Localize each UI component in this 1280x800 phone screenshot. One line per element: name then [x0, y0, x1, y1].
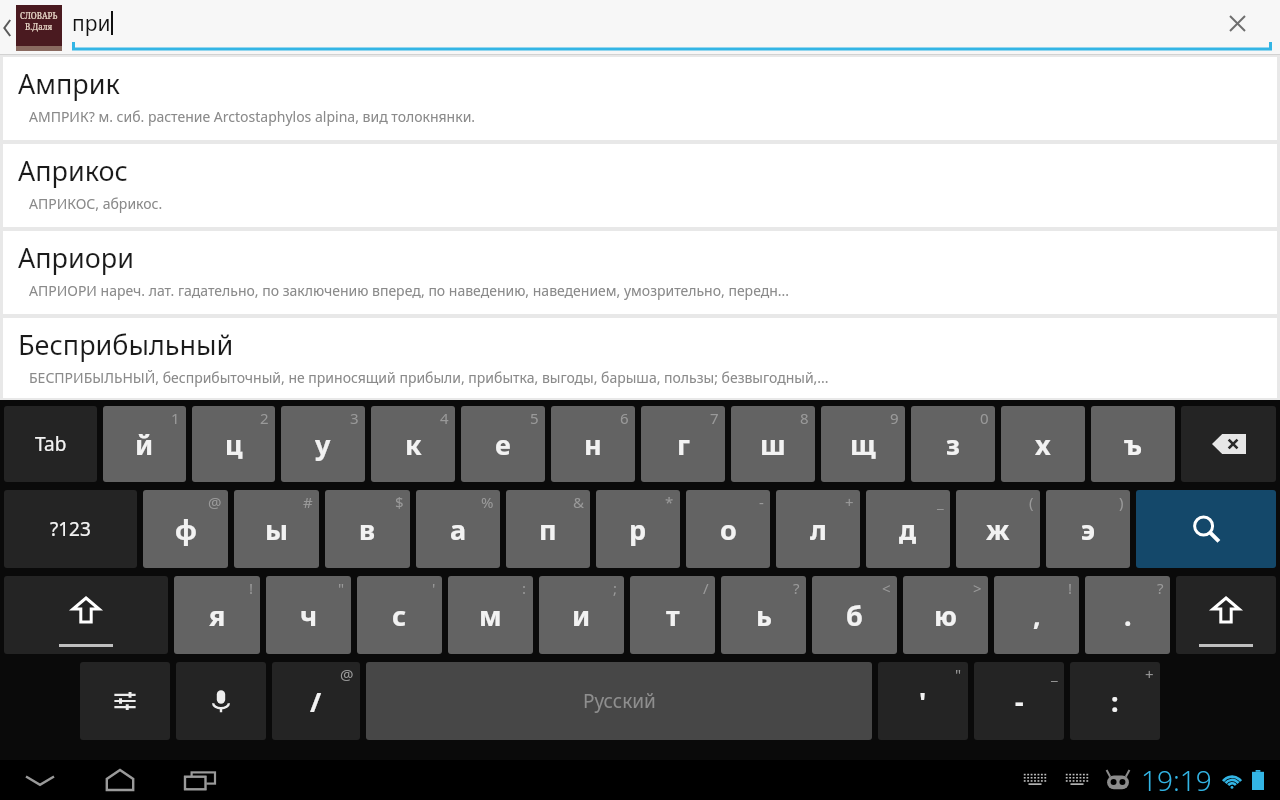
button[interactable]: е — [461, 406, 545, 482]
button[interactable]: Бесприбыльный — [3, 318, 1277, 398]
staticText: * — [665, 492, 674, 512]
staticText: ; — [613, 578, 618, 598]
button[interactable]: ж — [956, 490, 1040, 568]
button[interactable]: и — [539, 576, 624, 654]
staticText: _ — [937, 492, 944, 512]
button[interactable]: щ — [821, 406, 905, 482]
button[interactable]: ?123 — [4, 490, 137, 568]
staticText: л — [810, 511, 827, 548]
button[interactable]: ш — [731, 406, 815, 482]
button[interactable]: э — [1046, 490, 1130, 568]
button[interactable]: а — [416, 490, 500, 568]
button[interactable]: - — [974, 662, 1064, 740]
staticText: н — [584, 426, 602, 463]
staticText: + — [845, 492, 854, 512]
staticText: ы — [265, 511, 289, 548]
staticText: 9 — [890, 408, 899, 428]
button[interactable]: Русский — [366, 662, 872, 740]
staticText: ! — [1068, 578, 1073, 598]
staticText: 19:19 — [1141, 761, 1212, 799]
staticText: 0 — [980, 408, 989, 428]
staticText: 4 — [440, 408, 449, 428]
button[interactable]: Априори — [3, 231, 1277, 314]
staticText: . — [1124, 597, 1132, 634]
button[interactable]: к — [371, 406, 455, 482]
button[interactable]: ь — [721, 576, 806, 654]
button[interactable]: Keyboard settings — [80, 662, 170, 740]
button[interactable]: ъ — [1091, 406, 1175, 482]
staticText: / — [310, 683, 322, 720]
staticText: э — [1081, 511, 1096, 548]
button[interactable]: д — [866, 490, 950, 568]
button[interactable]: й — [103, 406, 186, 482]
staticText: ' — [432, 578, 436, 598]
button[interactable]: Априкос — [3, 144, 1277, 227]
button[interactable]: н — [551, 406, 635, 482]
staticText: $ — [395, 492, 404, 512]
staticText: з — [946, 426, 960, 463]
button[interactable]: ч — [266, 576, 351, 654]
button[interactable]: Search — [1136, 490, 1276, 568]
button[interactable]: Backspace — [1181, 406, 1276, 482]
staticText: - — [759, 492, 764, 512]
staticText: @ — [208, 492, 222, 512]
button[interactable]: р — [596, 490, 680, 568]
staticText: + — [1145, 664, 1154, 684]
button[interactable]: : — [1070, 662, 1160, 740]
button[interactable]: ю — [903, 576, 988, 654]
button[interactable]: Dictionary — [14, 4, 64, 52]
staticText: ъ — [1124, 426, 1143, 463]
button[interactable]: х — [1001, 406, 1085, 482]
staticText: в — [359, 511, 376, 548]
button[interactable]: л — [776, 490, 860, 568]
button[interactable]: Tab — [4, 406, 97, 482]
staticText: # — [303, 492, 313, 512]
button[interactable]: ф — [143, 490, 228, 568]
staticText: > — [973, 578, 982, 598]
staticText: В.Даля — [25, 21, 53, 32]
button[interactable]: , — [994, 576, 1079, 654]
staticText: ч — [300, 597, 318, 634]
button[interactable]: ц — [192, 406, 275, 482]
staticText: Амприк — [18, 65, 120, 102]
staticText: % — [481, 492, 494, 512]
button[interactable]: с — [357, 576, 442, 654]
button[interactable]: Voice input — [176, 662, 266, 740]
button[interactable]: . — [1085, 576, 1170, 654]
staticText: СЛОВАРЬ — [20, 10, 58, 21]
button[interactable]: м — [448, 576, 533, 654]
staticText: й — [135, 426, 154, 463]
staticText: ' — [919, 683, 927, 720]
button[interactable]: при — [72, 0, 1272, 55]
button[interactable]: Clear — [1222, 8, 1252, 38]
button[interactable]: Back — [0, 0, 14, 55]
staticText: Априкос — [18, 152, 128, 189]
button[interactable]: Recent apps — [178, 762, 222, 798]
staticText: ю — [934, 597, 957, 634]
button[interactable]: Shift — [1176, 576, 1276, 654]
staticText: 3 — [350, 408, 359, 428]
staticText: при — [72, 9, 111, 38]
button[interactable]: о — [686, 490, 770, 568]
button[interactable]: я — [174, 576, 260, 654]
button[interactable]: т — [630, 576, 715, 654]
staticText: т — [666, 597, 680, 634]
staticText: / — [703, 578, 709, 598]
button[interactable]: Амприк — [3, 57, 1277, 140]
button[interactable]: п — [506, 490, 590, 568]
button[interactable]: б — [812, 576, 897, 654]
button[interactable]: ' — [878, 662, 968, 740]
staticText: у — [315, 426, 331, 463]
button[interactable]: в — [325, 490, 410, 568]
button[interactable]: з — [911, 406, 995, 482]
button[interactable]: у — [281, 406, 365, 482]
button[interactable]: Home — [98, 762, 142, 798]
button[interactable]: г — [641, 406, 725, 482]
staticText: ( — [1029, 492, 1034, 512]
button[interactable]: ы — [234, 490, 319, 568]
staticText: : — [1111, 683, 1119, 720]
button[interactable]: Shift — [4, 576, 168, 654]
button[interactable]: / — [272, 662, 360, 740]
staticText: ? — [793, 578, 800, 598]
button[interactable]: Hide keyboard — [18, 762, 62, 798]
